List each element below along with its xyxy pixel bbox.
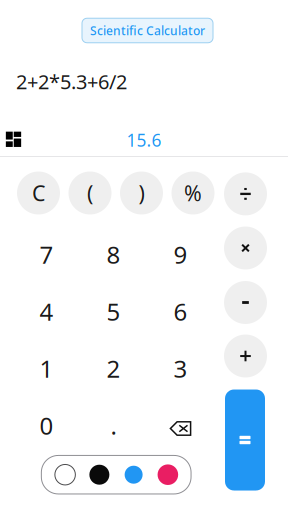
- button[interactable]: 2: [82, 342, 144, 394]
- staticText: (: [87, 179, 93, 207]
- button[interactable]: Multiply: [220, 223, 271, 273]
- button[interactable]: (: [64, 168, 115, 218]
- staticText: 1: [39, 353, 53, 384]
- button[interactable]: Subtract: [220, 277, 271, 327]
- button[interactable]: 8: [82, 228, 144, 280]
- button[interactable]: %: [167, 168, 218, 218]
- staticText: 15.6: [126, 128, 161, 151]
- staticText: 6: [173, 296, 187, 327]
- button[interactable]: Layout: [0, 124, 27, 154]
- staticText: 2: [106, 353, 120, 384]
- button[interactable]: C: [13, 168, 64, 218]
- button[interactable]: Divide: [220, 169, 271, 219]
- button[interactable]: 9: [149, 228, 211, 280]
- button[interactable]: ): [116, 168, 167, 218]
- button[interactable]: Add: [220, 331, 271, 381]
- button[interactable]: Scientific Calculator: [82, 18, 213, 43]
- button[interactable]: 6: [149, 285, 211, 337]
- staticText: 2+2*5.3+6/2: [16, 68, 127, 95]
- button[interactable]: 3: [149, 342, 211, 394]
- button[interactable]: 1: [15, 342, 77, 394]
- staticText: 7: [39, 239, 53, 270]
- staticText: .: [110, 410, 116, 441]
- staticText: 0: [39, 410, 53, 441]
- button[interactable]: Blue theme: [116, 455, 151, 494]
- button[interactable]: Delete: [149, 399, 211, 451]
- staticText: C: [32, 179, 45, 207]
- button[interactable]: 4: [15, 285, 77, 337]
- button[interactable]: 0: [15, 399, 77, 451]
- button[interactable]: 7: [15, 228, 77, 280]
- button[interactable]: Black theme: [82, 455, 116, 494]
- staticText: %: [184, 179, 202, 207]
- staticText: ): [138, 179, 144, 207]
- button[interactable]: Equals: [225, 389, 265, 490]
- staticText: Scientific Calculator: [90, 22, 205, 38]
- button[interactable]: 5: [82, 285, 144, 337]
- staticText: 9: [173, 239, 187, 270]
- staticText: 4: [39, 296, 53, 327]
- staticText: 8: [106, 239, 120, 270]
- button[interactable]: White theme: [48, 455, 82, 494]
- staticText: 5: [106, 296, 120, 327]
- button[interactable]: .: [82, 399, 144, 451]
- button[interactable]: Pink theme: [151, 455, 185, 494]
- staticText: 3: [173, 353, 187, 384]
